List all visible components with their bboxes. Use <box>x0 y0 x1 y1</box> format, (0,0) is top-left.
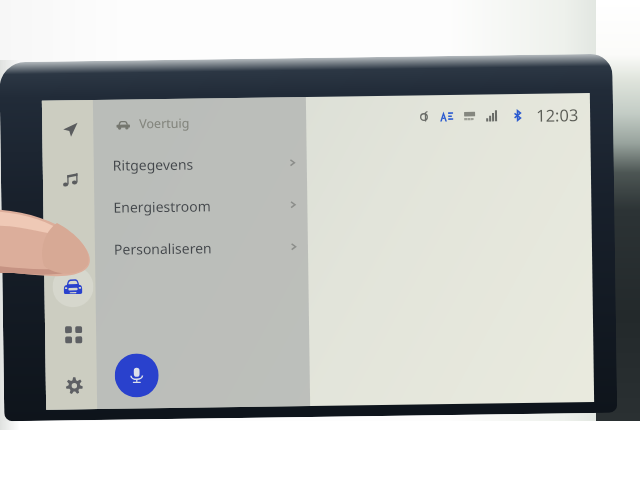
button[interactable]: Media <box>55 164 87 196</box>
staticText: Ritgegevens <box>113 155 194 175</box>
button[interactable]: Voice assistant <box>114 353 159 398</box>
staticText: 12:03 <box>536 103 579 126</box>
button[interactable]: Navigation <box>54 113 86 145</box>
staticText: Personaliseren <box>114 238 212 259</box>
button[interactable]: Energiestroom <box>99 183 308 228</box>
staticText: Voertuig <box>139 115 190 132</box>
staticText: Energiestroom <box>113 196 211 217</box>
button[interactable]: Ritgegevens <box>98 141 307 186</box>
button[interactable]: Voertuig <box>114 113 192 135</box>
button[interactable]: Vehicle <box>52 266 94 308</box>
button[interactable]: Apps <box>57 318 89 350</box>
button[interactable]: Personaliseren <box>100 225 308 270</box>
button[interactable]: Settings <box>58 369 90 401</box>
